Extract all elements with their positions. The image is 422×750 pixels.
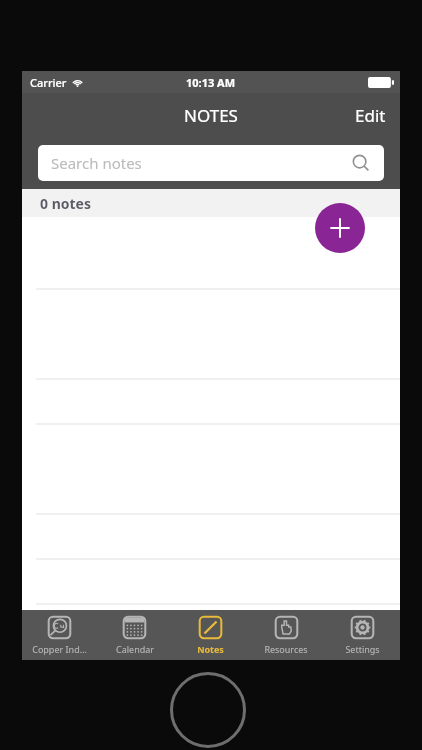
staticText: Carrier <box>30 75 67 90</box>
button[interactable]: Add note <box>315 203 365 253</box>
button[interactable]: Copper Ind… <box>22 610 97 660</box>
button[interactable]: Search notes <box>38 145 384 181</box>
staticText: Resources <box>264 643 308 655</box>
staticText: Copper Ind… <box>32 643 87 655</box>
button[interactable]: Settings <box>324 610 400 660</box>
staticText: Edit <box>355 104 386 127</box>
button[interactable]: Notes <box>172 610 248 660</box>
staticText: Search notes <box>51 153 352 173</box>
button[interactable]: Calendar <box>97 610 172 660</box>
button[interactable]: Edit <box>341 93 400 137</box>
staticText: 0 notes <box>40 194 91 213</box>
staticText: Settings <box>345 643 380 655</box>
staticText: Notes <box>197 643 224 655</box>
staticText: Calendar <box>116 643 154 655</box>
staticText: 10:13 AM <box>186 75 236 90</box>
staticText: NOTES <box>184 104 238 127</box>
button[interactable]: Resources <box>248 610 324 660</box>
